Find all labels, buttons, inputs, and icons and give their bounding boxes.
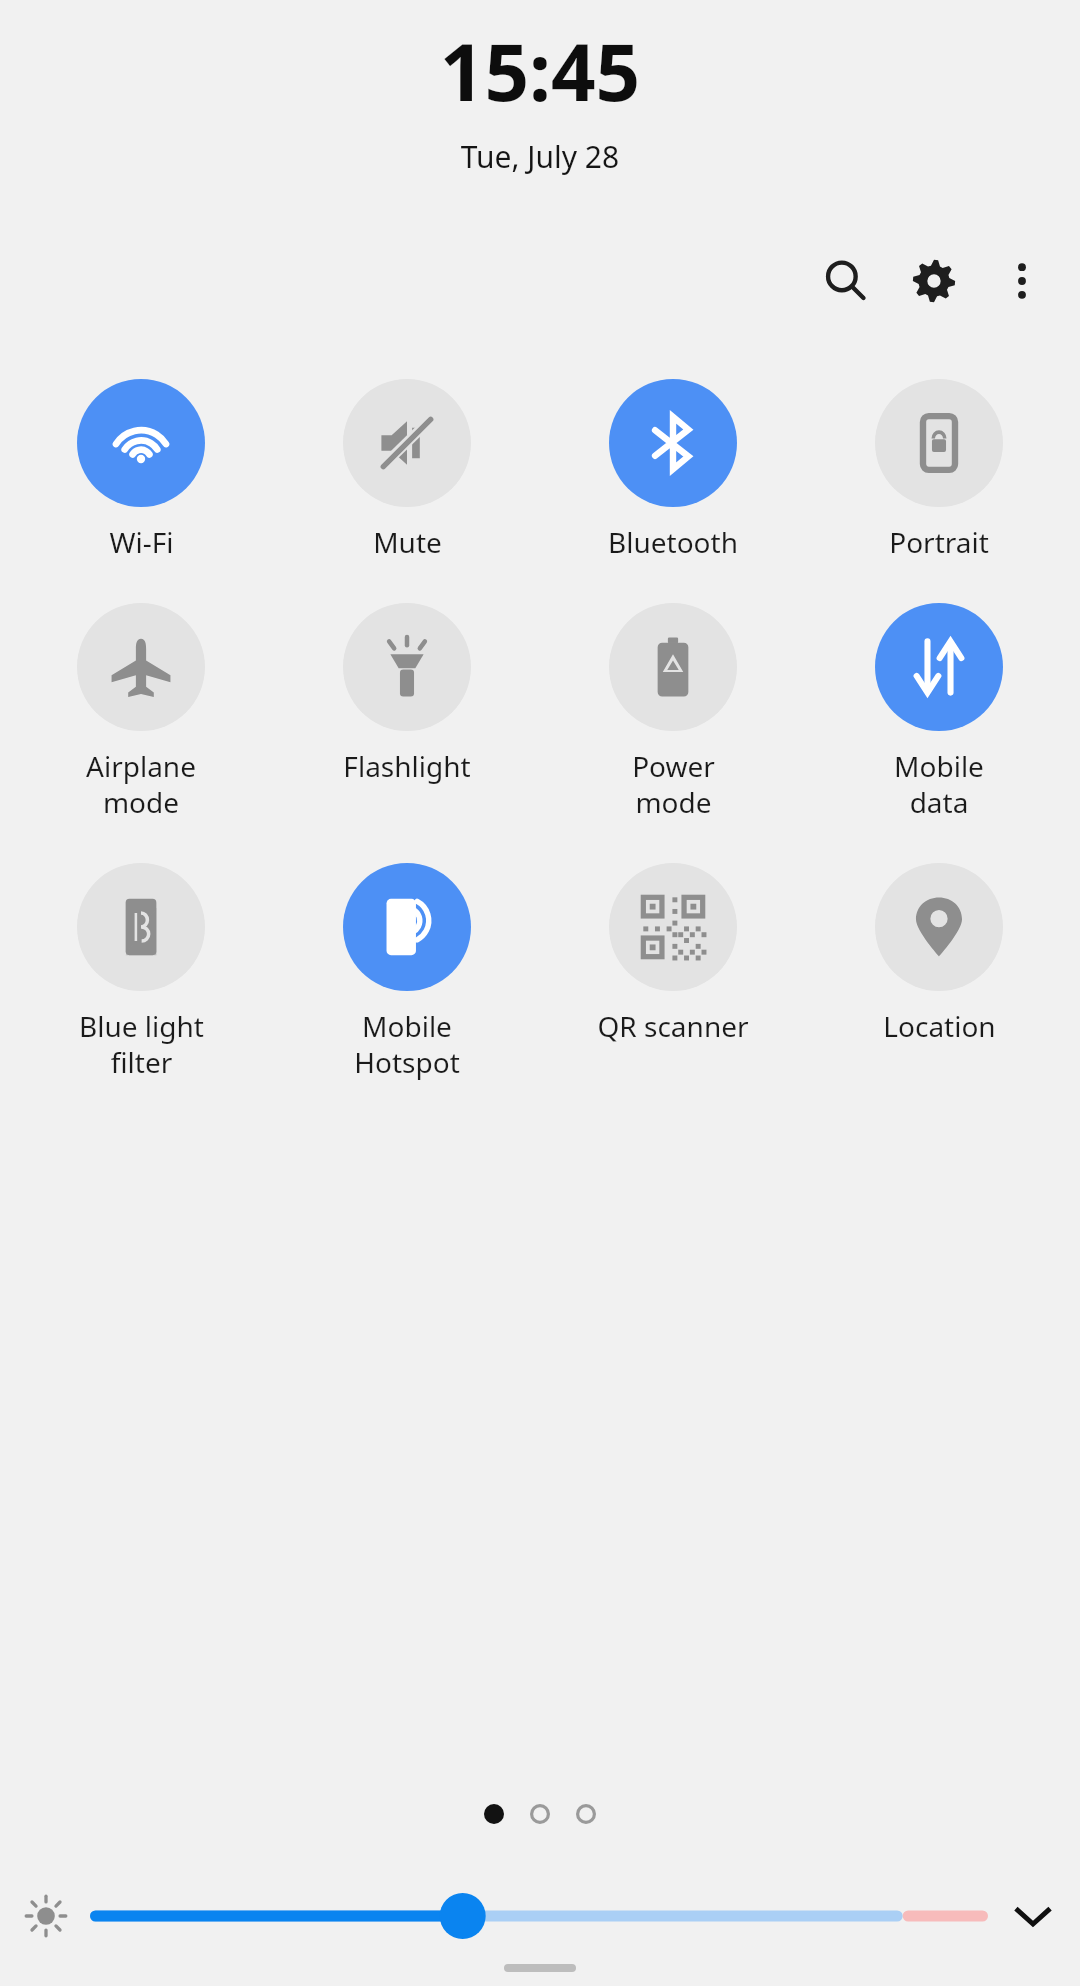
staticText: Tue, July 28 (0, 136, 1080, 177)
staticText: Location (883, 1007, 996, 1045)
staticText: Portrait (889, 523, 989, 561)
other: Brightness (16, 1886, 76, 1946)
button[interactable]: Mobile Hotspot (274, 863, 540, 1081)
button[interactable]: Portrait (806, 379, 1072, 561)
staticText: Mute (373, 523, 442, 561)
button[interactable]: More options (986, 245, 1058, 317)
button[interactable]: Bluetooth (540, 379, 806, 561)
button[interactable] (574, 1802, 598, 1826)
button[interactable]: Mute (274, 379, 540, 561)
staticText: Airplane mode (86, 747, 196, 821)
button[interactable] (90, 1888, 988, 1944)
button[interactable]: QR scanner (540, 863, 806, 1045)
staticText: Blue light filter (79, 1007, 204, 1081)
button[interactable] (528, 1802, 552, 1826)
button[interactable]: Airplane mode (8, 603, 274, 821)
button[interactable] (482, 1802, 506, 1826)
staticText: Wi‑Fi (109, 523, 174, 561)
button[interactable]: Wi‑Fi (8, 379, 274, 561)
staticText: Bluetooth (608, 523, 738, 561)
staticText: Power mode (632, 747, 715, 821)
button[interactable]: Expand (1002, 1886, 1064, 1946)
staticText: Mobile Hotspot (354, 1007, 460, 1081)
staticText: 15:45 (0, 18, 1080, 124)
button[interactable]: Power mode (540, 603, 806, 821)
button[interactable]: Flashlight (274, 603, 540, 785)
button[interactable]: Search (810, 245, 882, 317)
button[interactable]: Mobile data (806, 603, 1072, 821)
staticText: Mobile data (894, 747, 984, 821)
staticText: QR scanner (597, 1007, 749, 1045)
button[interactable]: Location (806, 863, 1072, 1045)
button[interactable]: Settings (898, 245, 970, 317)
button[interactable]: Blue light filter (8, 863, 274, 1081)
staticText: Flashlight (343, 747, 471, 785)
